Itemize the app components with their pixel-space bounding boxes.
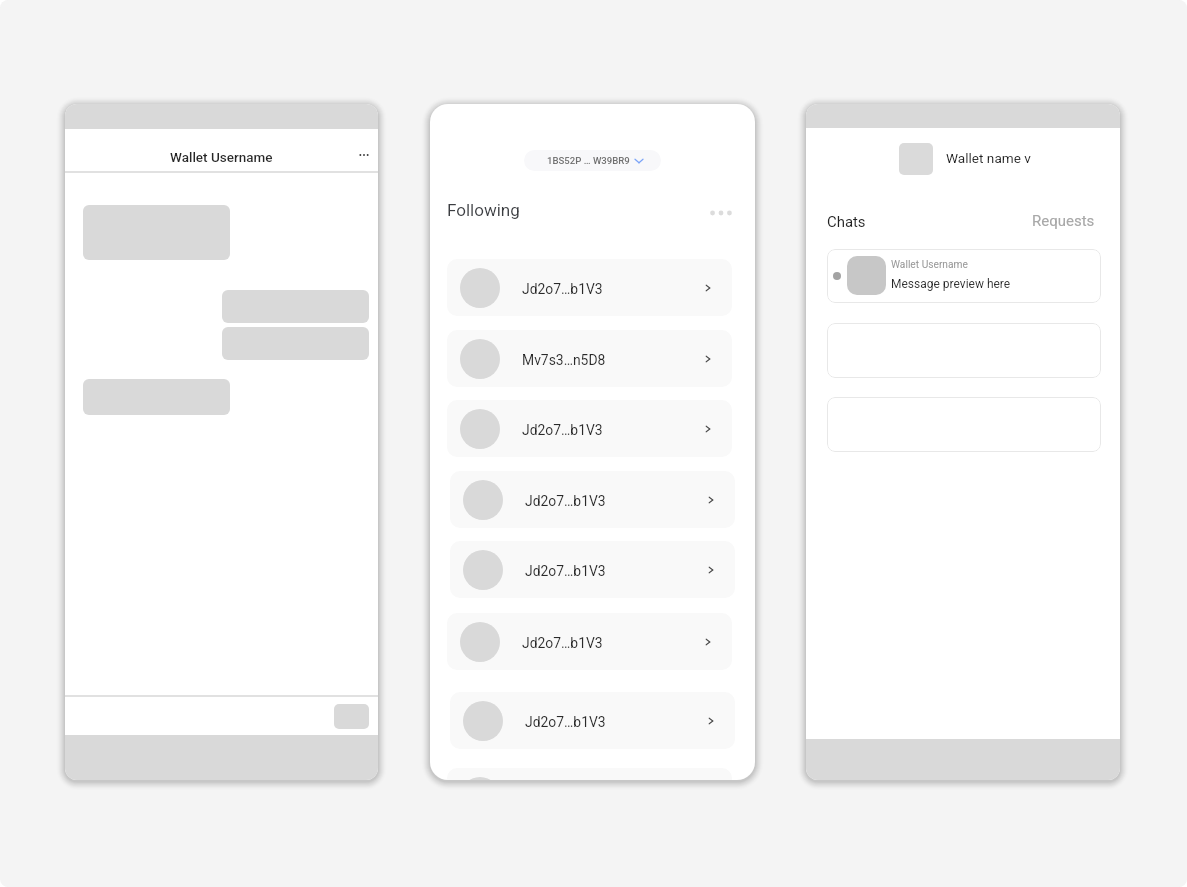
button[interactable]: 1BS52P … W39BR9: [524, 150, 661, 171]
staticText: Jd2o7…b1V3: [525, 563, 606, 579]
staticText: Wallet Username: [891, 259, 968, 271]
staticText: Jd2o7…b1V3: [525, 714, 606, 730]
button[interactable]: [827, 397, 1101, 452]
staticText: Jd2o7…b1V3: [522, 635, 603, 651]
staticText: Wallet Username: [170, 149, 273, 165]
staticText: Jd2o7…b1V3: [525, 493, 606, 509]
button[interactable]: Send message: [334, 704, 369, 729]
staticText: Wallet name v: [946, 150, 1031, 166]
button[interactable]: [447, 768, 732, 780]
button[interactable]: Jd2o7…b1V3: [450, 692, 735, 749]
staticText: Jd2o7…b1V3: [522, 281, 603, 297]
button[interactable]: Jd2o7…b1V3: [450, 541, 735, 598]
button[interactable]: Jd2o7…b1V3: [447, 613, 732, 670]
button[interactable]: More: [707, 199, 735, 227]
button[interactable]: Requests: [1032, 212, 1095, 230]
button[interactable]: Jd2o7…b1V3: [450, 471, 735, 528]
button[interactable]: [827, 323, 1101, 378]
staticText: Mv7s3…n5D8: [522, 352, 606, 368]
button[interactable]: Wallet name v: [899, 143, 1031, 175]
button[interactable]: Wallet Username: [827, 249, 1101, 303]
button[interactable]: Chats: [827, 213, 866, 230]
staticText: Following: [447, 200, 520, 220]
staticText: 1BS52P … W39BR9: [547, 155, 630, 166]
staticText: Message preview here: [891, 277, 1011, 291]
button[interactable]: Jd2o7…b1V3: [447, 400, 732, 457]
button[interactable]: Mv7s3…n5D8: [447, 330, 732, 387]
staticText: Jd2o7…b1V3: [522, 422, 603, 438]
button[interactable]: Jd2o7…b1V3: [447, 259, 732, 316]
button[interactable]: More options: [353, 144, 374, 165]
